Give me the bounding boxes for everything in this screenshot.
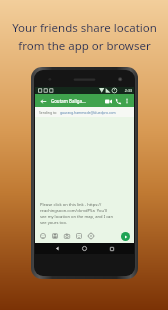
button[interactable]: Recent apps <box>107 244 116 253</box>
button[interactable]: Back <box>53 244 62 253</box>
staticText: Your friends share location <box>12 20 157 36</box>
staticText: Goutam Baliga... <box>51 98 103 104</box>
staticText: Please click on this link - https:// <box>40 202 128 208</box>
staticText: Sending to: <box>39 110 58 115</box>
staticText: from the app or browser <box>18 38 151 54</box>
staticText: see my location on the map, and I can <box>40 214 128 220</box>
staticText: reachingsoon.com/ckrvdP5a You'll <box>40 208 128 214</box>
button[interactable]: Sticker <box>75 232 83 240</box>
button[interactable]: Emoji <box>39 232 47 240</box>
staticText: gauravg.hammode@bluedpro.com <box>60 110 116 115</box>
button[interactable]: Back <box>38 96 48 106</box>
button[interactable]: Home <box>80 244 89 253</box>
staticText: see yours too. <box>40 220 128 226</box>
button[interactable]: Call <box>113 96 123 106</box>
button[interactable]: More options <box>123 97 131 105</box>
button[interactable]: Gallery <box>51 232 59 240</box>
staticText: 2:33 <box>124 88 132 93</box>
button[interactable]: Location <box>87 232 95 240</box>
button[interactable]: Send <box>121 232 130 241</box>
button[interactable]: Camera <box>63 232 71 240</box>
button[interactable]: Video call <box>103 96 113 106</box>
